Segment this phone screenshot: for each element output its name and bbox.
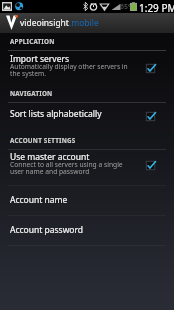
staticText: ACCOUNT SETTINGS — [10, 136, 76, 145]
staticText: Account password — [10, 224, 84, 236]
staticText: NAVIGATION — [10, 89, 53, 98]
staticText: 1:29 PM — [139, 1, 174, 14]
button[interactable]: Account password — [0, 215, 174, 245]
staticText: Account name — [10, 194, 68, 206]
staticText: Use master account — [10, 151, 90, 163]
staticText: Sort lists alphabetically — [10, 108, 102, 120]
button[interactable]: Use master account — [0, 149, 174, 184]
staticText: APPLICATION — [10, 37, 55, 46]
staticText: Automatically display other servers in t… — [10, 62, 128, 78]
staticText: 65% — [120, 2, 135, 12]
button[interactable]: Account name — [0, 185, 174, 215]
staticText: Connect to all servers using a single us… — [10, 160, 123, 176]
button[interactable]: Sort lists alphabetically — [0, 102, 174, 126]
staticText: .mobile — [69, 17, 99, 29]
button[interactable]: Import servers — [0, 50, 174, 82]
staticText: Import servers — [10, 53, 70, 65]
staticText: videoinsight — [20, 17, 69, 29]
